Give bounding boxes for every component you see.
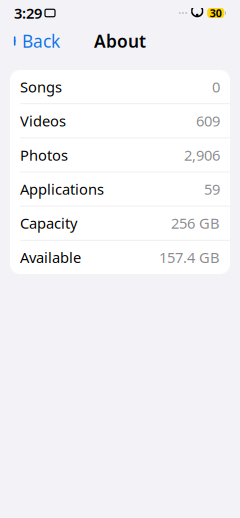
staticText: 157.4 GB	[159, 247, 220, 267]
staticText: 609	[196, 111, 220, 131]
staticText: Applications	[20, 179, 104, 199]
staticText: Videos	[20, 111, 66, 131]
staticText: Songs	[20, 77, 62, 96]
staticText: Back	[22, 29, 60, 52]
staticText: Photos	[20, 145, 68, 165]
staticText: 2,906	[184, 145, 220, 165]
staticText: 3:29	[14, 3, 42, 23]
staticText: 30	[210, 6, 222, 20]
staticText: 59	[204, 179, 220, 199]
staticText: Available	[20, 247, 81, 267]
staticText: About	[94, 29, 146, 52]
staticText: Capacity	[20, 213, 77, 233]
staticText: 0	[212, 77, 220, 96]
staticText: 256 GB	[171, 213, 220, 233]
button[interactable]: Back	[4, 24, 68, 57]
